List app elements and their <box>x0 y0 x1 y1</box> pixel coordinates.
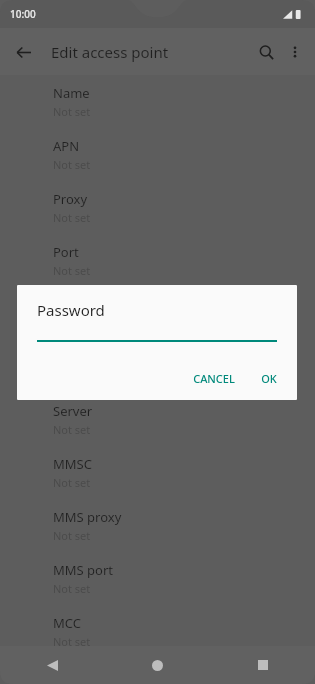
button[interactable]: APN <box>0 133 315 186</box>
staticText: Not set <box>53 528 91 543</box>
button[interactable]: MMSC <box>0 451 315 504</box>
staticText: Not set <box>53 422 91 437</box>
staticText: Not set <box>53 104 91 119</box>
button[interactable]: CANCEL <box>185 366 243 391</box>
button[interactable]: Proxy <box>0 186 315 239</box>
button[interactable]: Recents <box>210 646 315 684</box>
button[interactable]: MMS proxy <box>0 504 315 557</box>
button[interactable]: MMS port <box>0 557 315 610</box>
staticText: OK <box>261 371 277 386</box>
staticText: Not set <box>53 475 91 490</box>
staticText: MMS port <box>53 561 114 579</box>
button[interactable]: Username <box>0 292 315 345</box>
button[interactable]: Port <box>0 239 315 292</box>
staticText: 10:00 <box>10 7 36 21</box>
staticText: MCC <box>53 614 81 632</box>
button[interactable]: Password <box>0 345 315 398</box>
button[interactable]: More options <box>281 38 309 66</box>
staticText: Port <box>53 243 79 261</box>
staticText: Not set <box>53 157 91 172</box>
staticText: Not set <box>53 263 91 278</box>
button[interactable]: Name <box>0 80 315 133</box>
staticText: APN <box>53 137 80 155</box>
staticText: CANCEL <box>193 371 235 386</box>
button[interactable]: OK <box>253 366 285 391</box>
staticText: MMSC <box>53 455 92 473</box>
button[interactable]: Home <box>105 646 210 684</box>
staticText: Proxy <box>53 190 88 208</box>
staticText: Username <box>53 296 117 314</box>
staticText: MMS proxy <box>53 508 122 526</box>
button[interactable]: Server <box>0 398 315 451</box>
staticText: Edit access point <box>51 42 169 62</box>
button[interactable]: Back <box>10 39 36 65</box>
staticText: Server <box>53 402 93 420</box>
staticText: Not set <box>53 581 91 596</box>
button[interactable]: Back <box>0 646 105 684</box>
staticText: Not set <box>53 210 91 225</box>
staticText: Password <box>37 300 105 320</box>
staticText: Name <box>53 84 90 102</box>
staticText: Not set <box>53 634 91 646</box>
button[interactable]: Search <box>251 37 281 67</box>
button[interactable]: MCC <box>0 610 315 646</box>
